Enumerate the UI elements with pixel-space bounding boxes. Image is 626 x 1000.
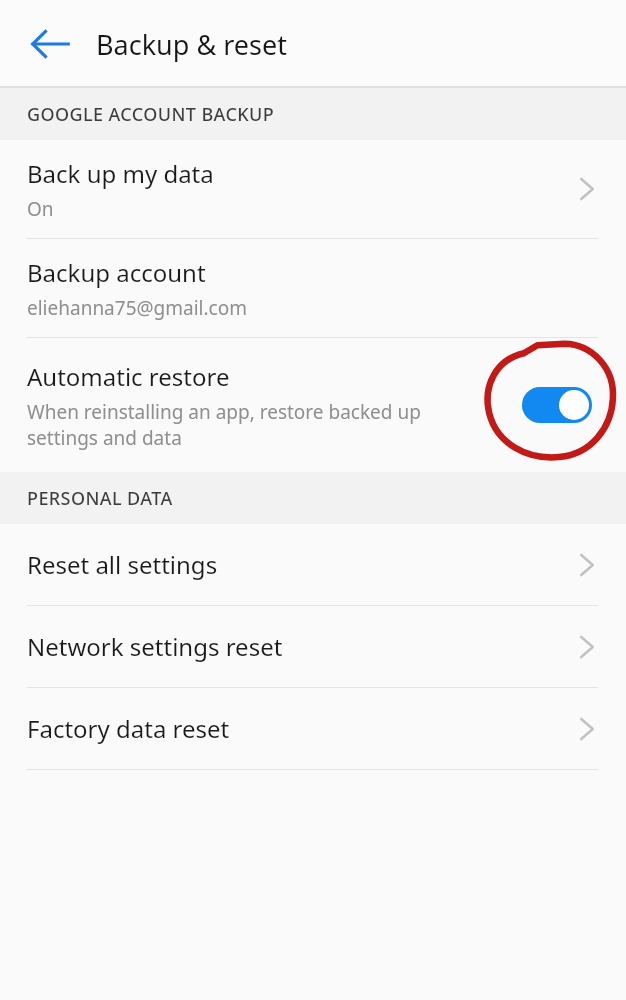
staticText: PERSONAL DATA: [27, 486, 173, 511]
staticText: Back up my data: [27, 157, 214, 190]
staticText: On: [27, 196, 54, 222]
staticText: Backup account: [27, 256, 206, 289]
button[interactable]: Back up my data: [0, 140, 626, 238]
button[interactable]: Backup account: [0, 239, 626, 337]
button[interactable]: Factory data reset: [0, 688, 626, 769]
staticText: Network settings reset: [27, 630, 283, 663]
button[interactable]: Reset all settings: [0, 524, 626, 605]
staticText: Backup & reset: [96, 26, 287, 63]
staticText: Reset all settings: [27, 548, 218, 581]
staticText: eliehanna75@gmail.com: [27, 295, 247, 321]
staticText: Factory data reset: [27, 712, 230, 745]
button[interactable]: Back: [22, 18, 78, 70]
button[interactable]: Automatic restore: [0, 338, 626, 472]
button[interactable]: Automatic restore toggle: [511, 374, 603, 436]
staticText: When reinstalling an app, restore backed…: [27, 399, 466, 451]
staticText: Automatic restore: [27, 360, 230, 393]
button[interactable]: Network settings reset: [0, 606, 626, 687]
staticText: GOOGLE ACCOUNT BACKUP: [27, 102, 275, 127]
